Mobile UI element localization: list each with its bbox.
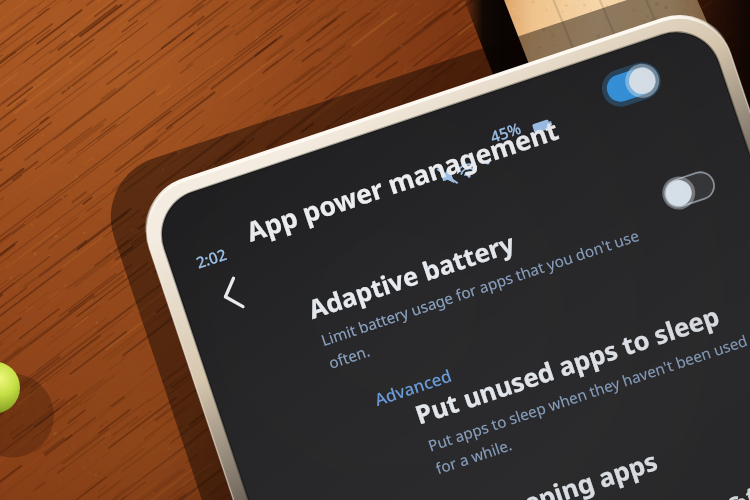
- button[interactable]: Back: [148, 218, 198, 268]
- button[interactable]: Put unused apps to sleep toggle, off: [486, 226, 556, 278]
- button[interactable]: [250, 320, 342, 354]
- button[interactable]: [262, 330, 592, 416]
- button[interactable]: Adaptive battery toggle, on: [476, 128, 546, 180]
- button[interactable]: [316, 452, 582, 498]
- button[interactable]: [288, 400, 522, 446]
- button[interactable]: [176, 236, 496, 322]
